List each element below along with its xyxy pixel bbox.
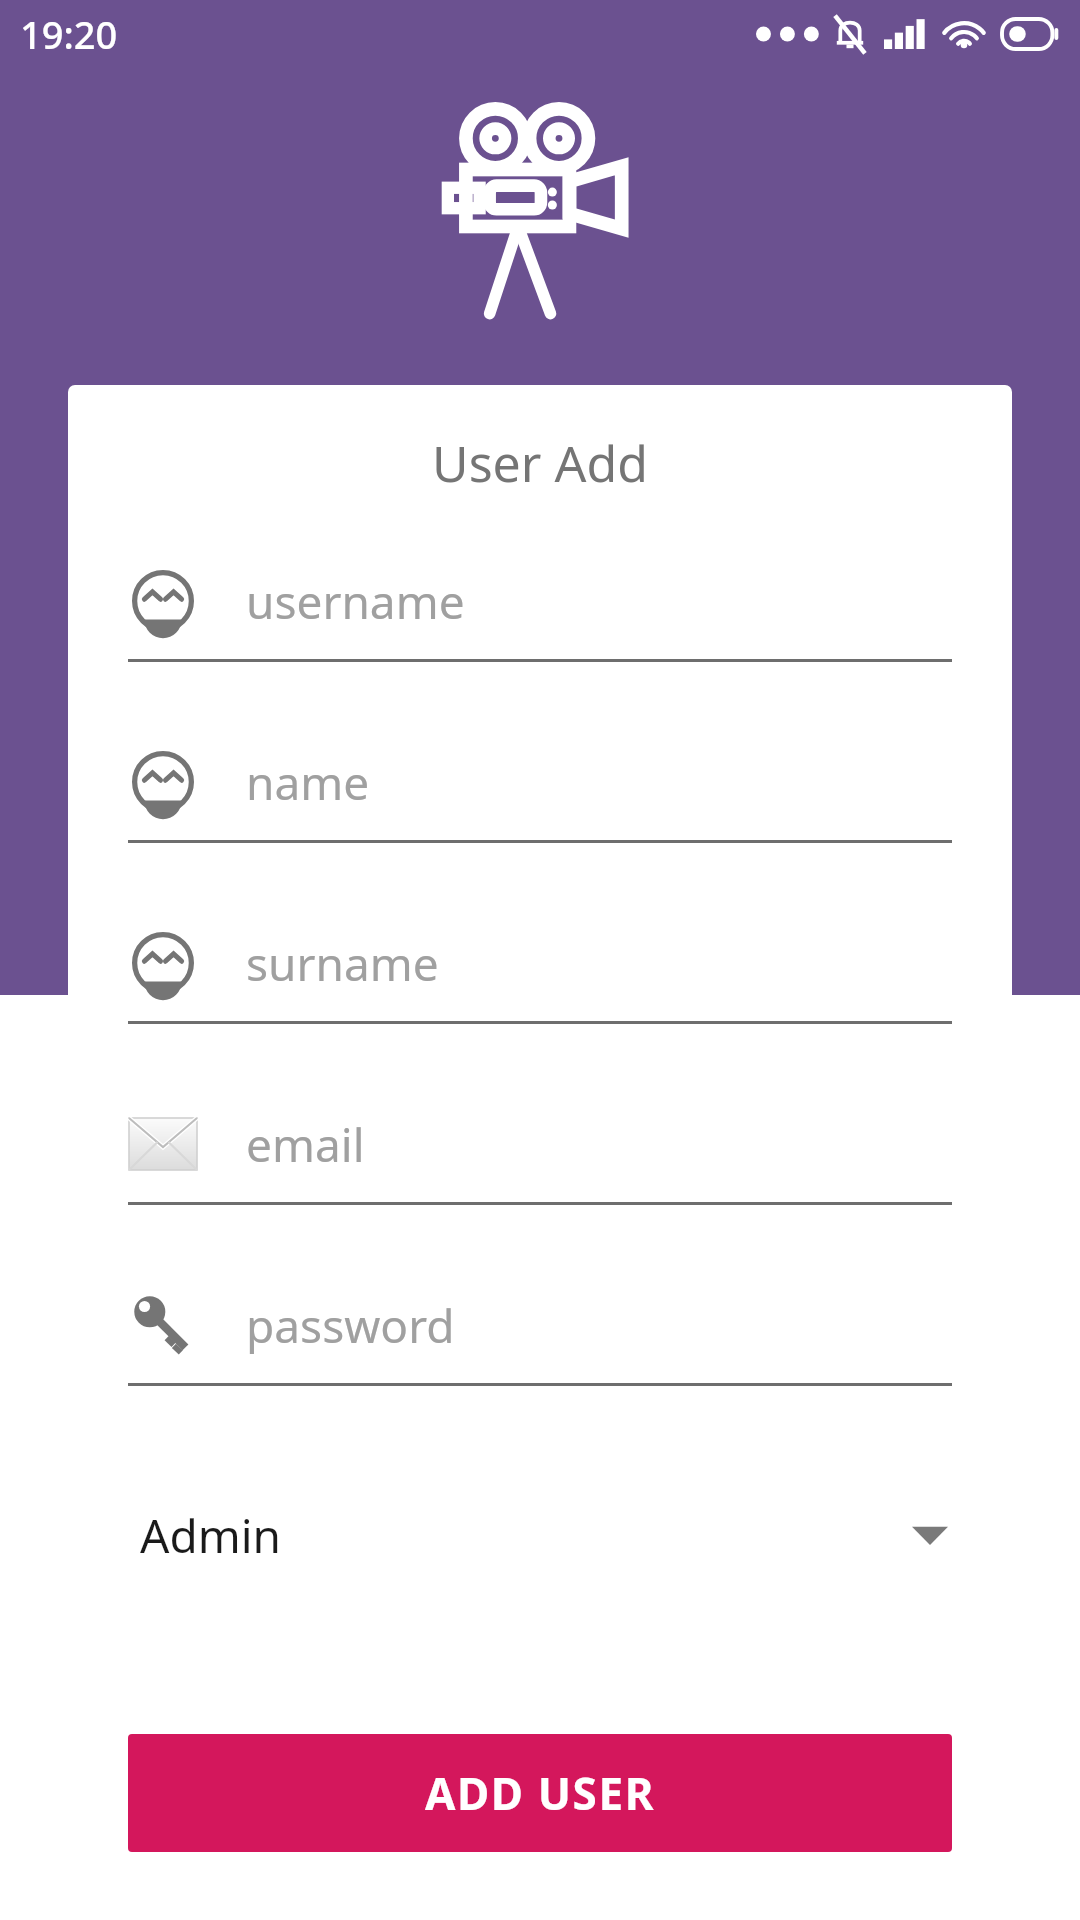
staticText: email: [246, 1113, 365, 1176]
staticText: Admin: [140, 1504, 281, 1567]
staticText: surname: [246, 932, 439, 995]
staticText: 19:20: [20, 8, 118, 60]
button[interactable]: ADD USER: [128, 1734, 952, 1852]
button[interactable]: surname: [128, 905, 952, 1086]
button[interactable]: password: [128, 1267, 952, 1448]
button[interactable]: name: [128, 724, 952, 905]
staticText: username: [246, 570, 465, 633]
staticText: User Add: [128, 429, 952, 497]
button[interactable]: email: [128, 1086, 952, 1267]
other: Select role: [912, 1522, 948, 1548]
button[interactable]: Admin: [128, 1482, 952, 1588]
staticText: ADD USER: [425, 1763, 656, 1823]
staticText: name: [246, 751, 370, 814]
button[interactable]: username: [128, 543, 952, 724]
staticText: password: [246, 1294, 455, 1357]
